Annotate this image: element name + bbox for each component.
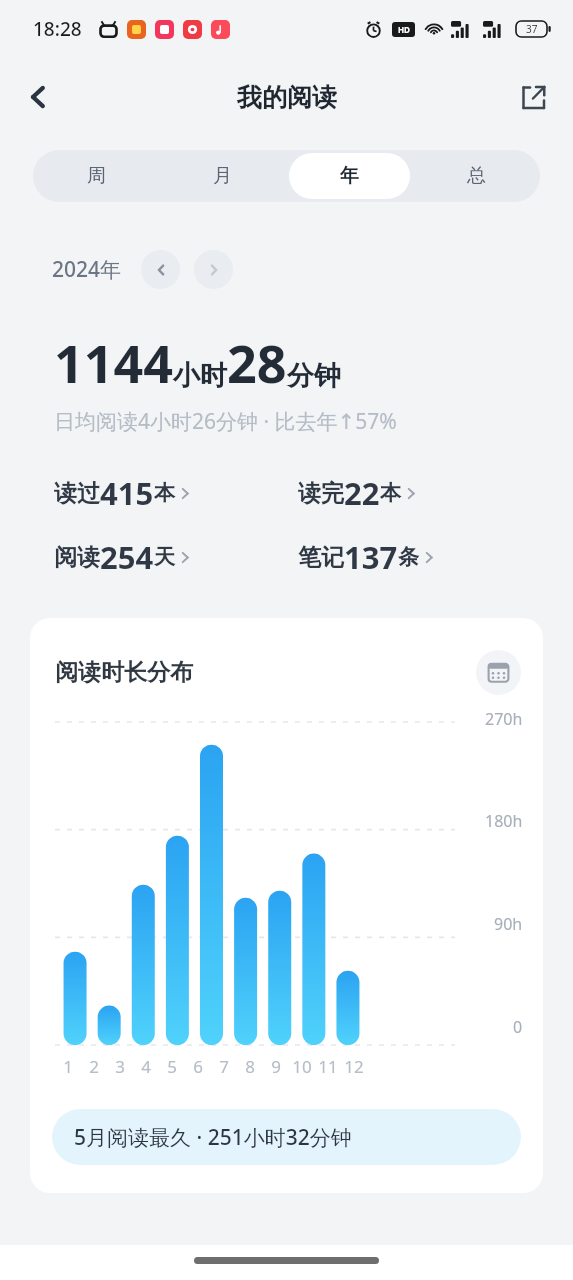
button[interactable]: 阅读 xyxy=(54,536,298,578)
staticText: 10 xyxy=(292,1055,312,1078)
staticText: 37 xyxy=(526,22,538,36)
button[interactable]: Next year xyxy=(194,250,233,289)
staticText: 2 xyxy=(89,1055,99,1078)
staticText: HD xyxy=(398,24,410,35)
staticText: 日均阅读4小时26分钟 · 比去年↑57% xyxy=(54,407,397,436)
staticText: 0 xyxy=(513,1016,523,1038)
staticText: 137 xyxy=(344,536,398,578)
staticText: 270h xyxy=(485,708,523,730)
staticText: 小时 xyxy=(173,359,227,393)
staticText: 我的阅读 xyxy=(237,82,337,113)
staticText: 本 xyxy=(380,480,401,506)
staticText: 笔记 xyxy=(298,543,344,572)
staticText: 5 xyxy=(167,1055,177,1078)
staticText: 4 xyxy=(141,1055,151,1078)
staticText: 22 xyxy=(344,472,380,514)
staticText: 18:28 xyxy=(33,16,82,42)
staticText: 条 xyxy=(398,544,419,570)
staticText: 读过 xyxy=(54,479,100,508)
button[interactable]: 读完 xyxy=(298,472,543,514)
staticText: 28 xyxy=(227,327,287,398)
staticText: 180h xyxy=(485,810,523,832)
button[interactable]: 笔记 xyxy=(298,536,543,578)
button[interactable]: 5月阅读最久 · 251小时32分钟 xyxy=(52,1109,521,1165)
staticText: 阅读时长分布 xyxy=(55,658,193,687)
staticText: 分钟 xyxy=(287,359,341,393)
staticText: 天 xyxy=(154,544,175,570)
button[interactable]: Back xyxy=(14,72,64,122)
button[interactable]: 读过 xyxy=(54,472,298,514)
staticText: 254 xyxy=(100,536,154,578)
staticText: 7 xyxy=(219,1055,229,1078)
staticText: 阅读 xyxy=(54,543,100,572)
staticText: 6 xyxy=(193,1055,203,1078)
staticText: 总 xyxy=(467,164,486,188)
staticText: 8 xyxy=(245,1055,255,1078)
staticText: 年 xyxy=(340,164,359,188)
staticText: 周 xyxy=(87,164,106,188)
button[interactable]: Select date xyxy=(476,650,521,695)
button[interactable]: 月 xyxy=(162,153,283,199)
button[interactable]: 年 xyxy=(289,153,410,199)
staticText: 415 xyxy=(100,472,154,514)
staticText: 12 xyxy=(344,1055,364,1078)
staticText: 9 xyxy=(271,1055,281,1078)
staticText: 1144 xyxy=(54,327,173,398)
staticText: 读完 xyxy=(298,479,344,508)
staticText: 2024年 xyxy=(52,255,122,284)
button[interactable]: Previous year xyxy=(141,250,180,289)
staticText: 1 xyxy=(63,1055,73,1078)
staticText: 本 xyxy=(154,480,175,506)
staticText: 3 xyxy=(115,1055,125,1078)
staticText: 5月阅读最久 · 251小时32分钟 xyxy=(74,1123,352,1152)
staticText: 90h xyxy=(494,913,523,935)
staticText: 月 xyxy=(213,164,232,188)
staticText: 11 xyxy=(318,1055,338,1078)
button[interactable]: 总 xyxy=(416,153,537,199)
button[interactable]: 周 xyxy=(36,153,156,199)
button[interactable]: Share xyxy=(509,73,557,121)
